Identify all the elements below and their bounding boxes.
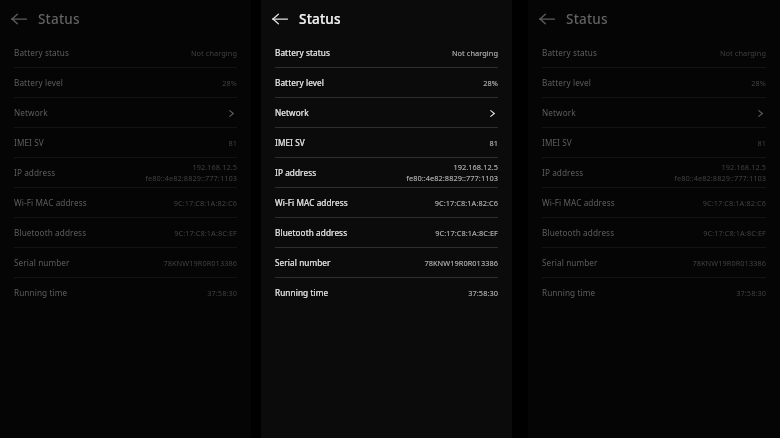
- button[interactable]: Battery level: [528, 68, 780, 97]
- button[interactable]: Network: [261, 98, 512, 127]
- staticText: IP address: [275, 167, 317, 178]
- staticText: 28%: [483, 78, 498, 88]
- button[interactable]: IMEI SV: [261, 128, 512, 157]
- button[interactable]: Bluetooth address: [261, 218, 512, 247]
- button[interactable]: IP address: [528, 158, 780, 187]
- staticText: Battery status: [14, 47, 69, 58]
- button[interactable]: Serial number: [528, 248, 780, 277]
- button[interactable]: Wi-Fi MAC address: [261, 188, 512, 217]
- button[interactable]: Back: [269, 8, 291, 30]
- button[interactable]: Bluetooth address: [0, 218, 251, 247]
- staticText: Battery level: [275, 77, 324, 88]
- button[interactable]: Running time: [528, 278, 780, 307]
- button[interactable]: Bluetooth address: [528, 218, 780, 247]
- staticText: Wi-Fi MAC address: [275, 197, 348, 208]
- staticText: Not charging: [190, 48, 237, 58]
- staticText: IMEI SV: [275, 137, 305, 148]
- staticText: Bluetooth address: [14, 227, 87, 238]
- button[interactable]: Battery level: [261, 68, 512, 97]
- staticText: IP address: [542, 167, 584, 178]
- button[interactable]: Serial number: [0, 248, 251, 277]
- staticText: Serial number: [542, 257, 598, 268]
- staticText: Running time: [14, 287, 68, 298]
- staticText: IP address: [14, 167, 56, 178]
- button[interactable]: Network: [528, 98, 780, 127]
- button[interactable]: Back: [536, 8, 558, 30]
- button[interactable]: Running time: [261, 278, 512, 307]
- button[interactable]: IP address: [261, 158, 512, 187]
- staticText: Status: [38, 10, 80, 28]
- staticText: Not charging: [451, 48, 498, 58]
- staticText: Bluetooth address: [542, 227, 615, 238]
- staticText: Network: [275, 107, 309, 118]
- staticText: Wi-Fi MAC address: [14, 197, 87, 208]
- staticText: 9C:17:C8:1A:82:C6: [173, 198, 237, 208]
- staticText: 37:58:30: [736, 288, 766, 298]
- button[interactable]: Serial number: [261, 248, 512, 277]
- staticText: 37:58:30: [468, 288, 498, 298]
- staticText: 9C:17:C8:1A:8C:EF: [435, 228, 498, 238]
- button[interactable]: Running time: [0, 278, 251, 307]
- staticText: 81: [757, 138, 766, 148]
- button[interactable]: Battery status: [0, 38, 251, 67]
- staticText: Battery level: [542, 77, 591, 88]
- staticText: 81: [228, 138, 237, 148]
- staticText: Running time: [542, 287, 596, 298]
- staticText: 192.168.12.5: [192, 162, 237, 172]
- staticText: 28%: [751, 78, 766, 88]
- staticText: 81: [489, 138, 498, 148]
- staticText: Status: [299, 10, 341, 28]
- button[interactable]: IMEI SV: [528, 128, 780, 157]
- staticText: 9C:17:C8:1A:82:C6: [702, 198, 766, 208]
- staticText: IMEI SV: [14, 137, 44, 148]
- staticText: fe80::4e82:8829::777:1103: [145, 173, 237, 183]
- button[interactable]: Network: [0, 98, 251, 127]
- button[interactable]: Battery status: [528, 38, 780, 67]
- staticText: fe80::4e82:8829::777:1103: [406, 173, 498, 183]
- button[interactable]: Battery status: [261, 38, 512, 67]
- staticText: 28%: [222, 78, 237, 88]
- staticText: 192.168.12.5: [453, 162, 498, 172]
- staticText: Serial number: [14, 257, 70, 268]
- staticText: 9C:17:C8:1A:8C:EF: [174, 228, 237, 238]
- staticText: 9C:17:C8:1A:8C:EF: [703, 228, 766, 238]
- staticText: Wi-Fi MAC address: [542, 197, 615, 208]
- button[interactable]: Wi-Fi MAC address: [528, 188, 780, 217]
- staticText: Status: [566, 10, 608, 28]
- staticText: fe80::4e82:8829::777:1103: [674, 173, 766, 183]
- staticText: 78KNW19R0R013386: [692, 258, 766, 268]
- button[interactable]: Battery level: [0, 68, 251, 97]
- staticText: Bluetooth address: [275, 227, 348, 238]
- staticText: 9C:17:C8:1A:82:C6: [434, 198, 498, 208]
- staticText: Running time: [275, 287, 329, 298]
- staticText: Serial number: [275, 257, 331, 268]
- staticText: 37:58:30: [207, 288, 237, 298]
- staticText: Battery status: [542, 47, 597, 58]
- button[interactable]: IP address: [0, 158, 251, 187]
- button[interactable]: IMEI SV: [0, 128, 251, 157]
- button[interactable]: Back: [8, 8, 30, 30]
- button[interactable]: Wi-Fi MAC address: [0, 188, 251, 217]
- staticText: IMEI SV: [542, 137, 572, 148]
- staticText: Network: [542, 107, 576, 118]
- staticText: Battery status: [275, 47, 330, 58]
- staticText: 78KNW19R0R013386: [163, 258, 237, 268]
- staticText: Battery level: [14, 77, 63, 88]
- staticText: 192.168.12.5: [721, 162, 766, 172]
- staticText: Not charging: [719, 48, 766, 58]
- staticText: 78KNW19R0R013386: [424, 258, 498, 268]
- staticText: Network: [14, 107, 48, 118]
